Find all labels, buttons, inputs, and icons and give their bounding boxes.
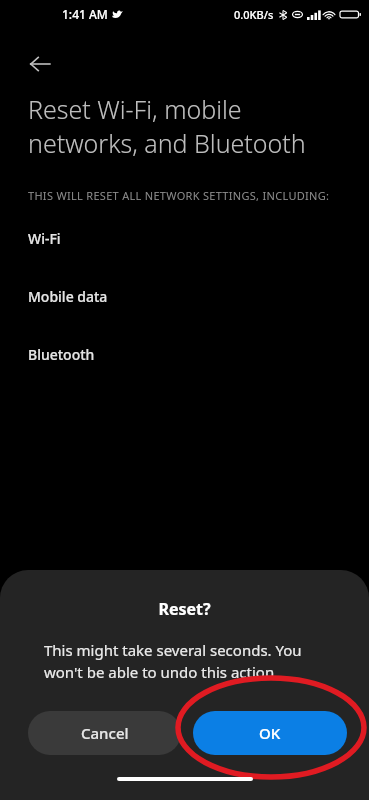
staticText: Bluetooth: [28, 345, 95, 364]
staticText: Reset Wi-Fi, mobile networks, and Blueto…: [28, 92, 306, 160]
staticText: This might take several seconds. You won…: [44, 640, 302, 683]
button[interactable]: Wi-Fi: [0, 229, 369, 248]
button[interactable]: Mobile data: [0, 287, 369, 306]
staticText: 1:41 AM: [62, 6, 108, 22]
staticText: OK: [259, 723, 281, 743]
button[interactable]: Cancel: [28, 711, 181, 755]
staticText: Cancel: [81, 723, 129, 743]
button[interactable]: OK: [193, 711, 347, 755]
staticText: Reset?: [0, 598, 369, 620]
button[interactable]: Bluetooth: [0, 345, 369, 364]
staticText: THIS WILL RESET ALL NETWORK SETTINGS, IN…: [28, 188, 330, 203]
staticText: 0.0KB/s: [234, 7, 274, 22]
button[interactable]: Back: [16, 40, 64, 88]
staticText: Wi-Fi: [28, 229, 61, 248]
staticText: Mobile data: [28, 287, 108, 306]
